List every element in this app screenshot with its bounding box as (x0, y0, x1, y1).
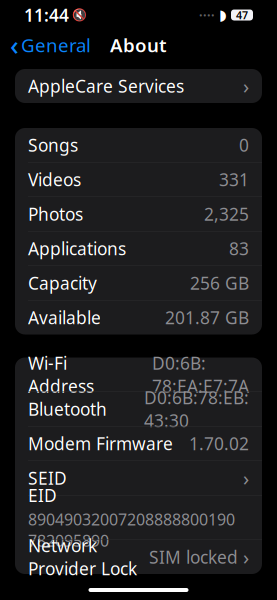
staticText: Photos (28, 202, 83, 225)
staticText: 2,325 (204, 202, 249, 225)
staticText: 83 (229, 237, 249, 260)
staticText: 🔇 (72, 8, 87, 22)
staticText: About (110, 33, 167, 57)
staticText: AppleCare Services (28, 74, 184, 97)
staticText: 89049032007208888800190782095890 (28, 509, 235, 551)
staticText: 331 (219, 168, 249, 191)
button[interactable]: AppleCare Services (15, 69, 262, 103)
staticText: •••• (199, 9, 215, 21)
button[interactable]: ‹ (2, 31, 99, 59)
staticText: Capacity (28, 271, 97, 294)
staticText: ◗ (219, 7, 227, 23)
staticText: Modem Firmware (28, 432, 173, 455)
staticText: Network Provider Lock (28, 534, 137, 580)
staticText: D0:6B:78:EA:E7:7A (152, 351, 249, 397)
staticText: D0:6B:78:EB:43:30 (144, 386, 249, 432)
staticText: ‹ (10, 27, 19, 63)
staticText: SEID (28, 466, 67, 489)
staticText: EID (28, 484, 57, 507)
staticText: Wi-Fi Address (28, 351, 94, 397)
button[interactable]: Network Provider Lock (15, 540, 262, 574)
staticText: General (21, 33, 91, 57)
staticText: › (243, 73, 249, 99)
staticText: Applications (28, 237, 126, 260)
staticText: 0 (239, 133, 249, 156)
staticText: 11:44 (24, 3, 69, 26)
button[interactable]: SEID (15, 461, 262, 495)
staticText: Available (28, 306, 101, 329)
staticText: 256 GB (190, 271, 249, 294)
staticText: › (243, 465, 249, 491)
staticText: Videos (28, 168, 81, 191)
staticText: 47 (236, 8, 248, 22)
staticText: 1.70.02 (189, 432, 249, 455)
staticText: 201.87 GB (165, 306, 249, 329)
staticText: Songs (28, 133, 78, 156)
staticText: SIM locked (149, 545, 238, 568)
staticText: Bluetooth (28, 397, 107, 420)
staticText: › (243, 544, 249, 570)
